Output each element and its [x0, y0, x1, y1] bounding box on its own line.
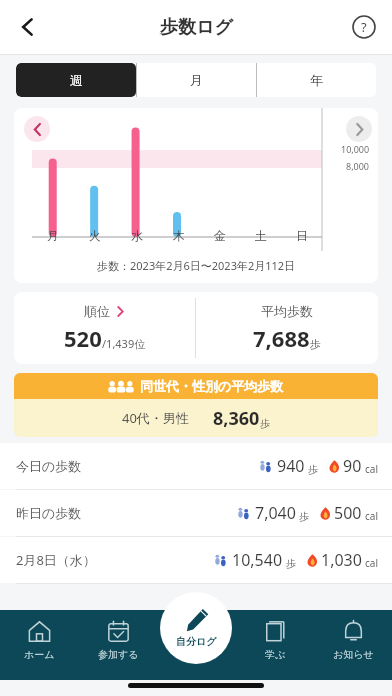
staticText: 学ぶ [265, 648, 286, 661]
staticText: cal [365, 509, 378, 523]
button[interactable]: Previous week [24, 116, 50, 142]
staticText: 歩数ログ [160, 16, 233, 39]
staticText: 8,000 [346, 160, 370, 172]
staticText: 順位 [84, 303, 110, 319]
staticText: 参加する [98, 648, 139, 661]
staticText: cal [365, 556, 378, 570]
staticText: 今日の歩数 [16, 458, 82, 474]
button[interactable]: Back [6, 5, 50, 49]
staticText: 940 [277, 455, 305, 477]
button[interactable]: 今日の歩数 [0, 443, 392, 489]
staticText: 週 [70, 72, 83, 88]
staticText: 月 [47, 228, 59, 243]
staticText: ? [361, 18, 367, 36]
button[interactable]: ホーム [0, 610, 79, 680]
staticText: 金 [214, 228, 226, 243]
button[interactable]: 年 [257, 63, 376, 97]
staticText: 平均歩数 [261, 303, 313, 319]
staticText: 昨日の歩数 [16, 505, 82, 521]
button[interactable]: 学ぶ [236, 610, 314, 680]
staticText: 2月8日（水） [16, 551, 96, 569]
staticText: cal [365, 462, 378, 476]
staticText: 歩 [299, 510, 309, 523]
staticText: 歩数：2023年2月6日〜2023年2月112日 [97, 258, 296, 273]
staticText: 日 [296, 228, 308, 243]
staticText: 自分ログ [176, 635, 217, 648]
staticText: 歩 [310, 337, 321, 351]
staticText: 土 [255, 228, 267, 243]
staticText: 同世代・性別の平均歩数 [140, 378, 284, 394]
button[interactable]: Help [344, 7, 384, 47]
button[interactable]: Next week [346, 116, 372, 142]
button[interactable]: 月 [137, 63, 256, 97]
staticText: 歩 [260, 417, 270, 430]
staticText: 年 [310, 72, 323, 88]
staticText: 7,040 [255, 502, 296, 524]
staticText: 8,360 [213, 406, 260, 431]
staticText: 7,688 [253, 323, 310, 353]
staticText: 10,000 [341, 143, 370, 155]
staticText: 90 [343, 455, 362, 477]
staticText: 1,030 [321, 549, 362, 571]
staticText: /1,439位 [102, 336, 146, 351]
button[interactable]: 順位 [14, 292, 195, 364]
button[interactable]: 週 [16, 63, 136, 97]
staticText: お知らせ [333, 648, 374, 661]
button[interactable]: 自分ログ [160, 592, 232, 664]
staticText: 歩 [286, 557, 296, 570]
button[interactable]: 参加する [79, 610, 158, 680]
staticText: 火 [89, 228, 101, 243]
staticText: 520 [64, 323, 102, 353]
button[interactable]: お知らせ [314, 610, 392, 680]
button[interactable]: 2月8日（水） [0, 537, 392, 583]
staticText: 500 [334, 502, 362, 524]
staticText: 歩 [308, 463, 318, 476]
staticText: 水 [131, 228, 143, 243]
staticText: ホーム [24, 648, 55, 661]
staticText: 40代・男性 [122, 409, 189, 427]
staticText: 10,540 [232, 549, 283, 571]
button[interactable]: 昨日の歩数 [0, 490, 392, 536]
staticText: 木 [173, 228, 185, 243]
staticText: 月 [190, 72, 203, 88]
